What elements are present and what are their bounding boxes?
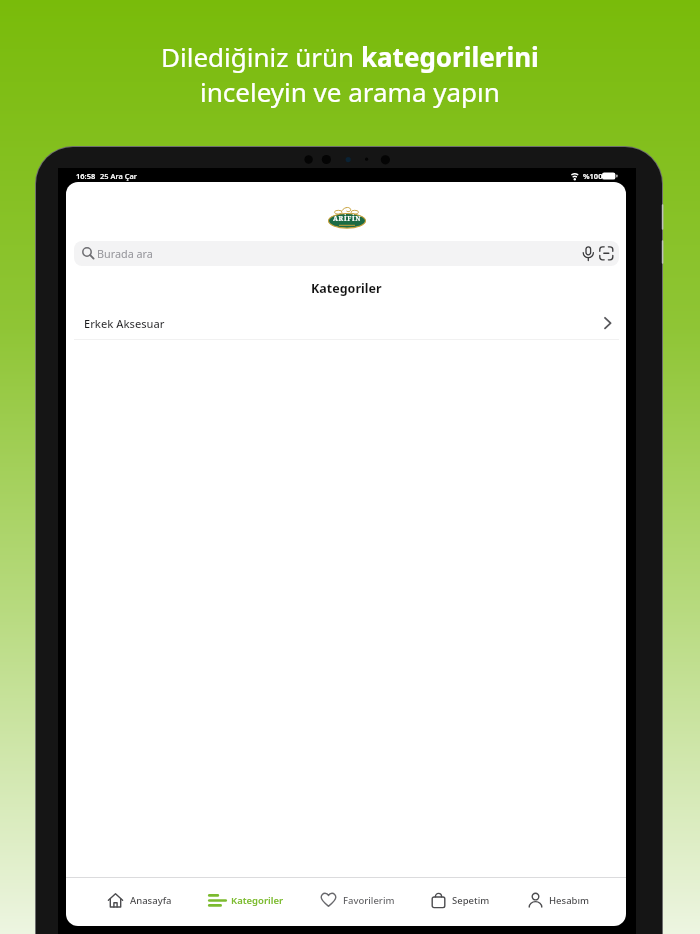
button[interactable]: Erkek Aksesuar bbox=[66, 306, 626, 340]
button[interactable]: Anasayfa bbox=[107, 884, 172, 916]
staticText: 25 Ara Çar bbox=[100, 171, 137, 181]
staticText: Dilediğiniz ürün kategorilerini bbox=[161, 39, 539, 74]
staticText: ARİFİN bbox=[333, 214, 362, 223]
button[interactable]: Hesabım bbox=[527, 884, 590, 916]
button[interactable]: Favorilerim bbox=[320, 884, 395, 916]
button[interactable]: Burada ara bbox=[74, 241, 619, 266]
staticText: Sepetim bbox=[452, 894, 490, 907]
staticText: %100 bbox=[583, 171, 603, 181]
button[interactable]: Sepetim bbox=[430, 884, 490, 916]
staticText: 16:58 bbox=[76, 171, 96, 181]
staticText: Favorilerim bbox=[343, 894, 395, 907]
button[interactable]: Kategoriler bbox=[208, 884, 284, 916]
staticText: Anasayfa bbox=[130, 894, 172, 907]
staticText: inceleyin ve arama yapın bbox=[200, 74, 500, 109]
staticText: Hesabım bbox=[549, 894, 590, 907]
staticText: Erkek Aksesuar bbox=[84, 316, 165, 331]
staticText: Burada ara bbox=[97, 246, 153, 261]
staticText: Kategoriler bbox=[311, 280, 382, 297]
staticText: Kategoriler bbox=[231, 894, 284, 907]
